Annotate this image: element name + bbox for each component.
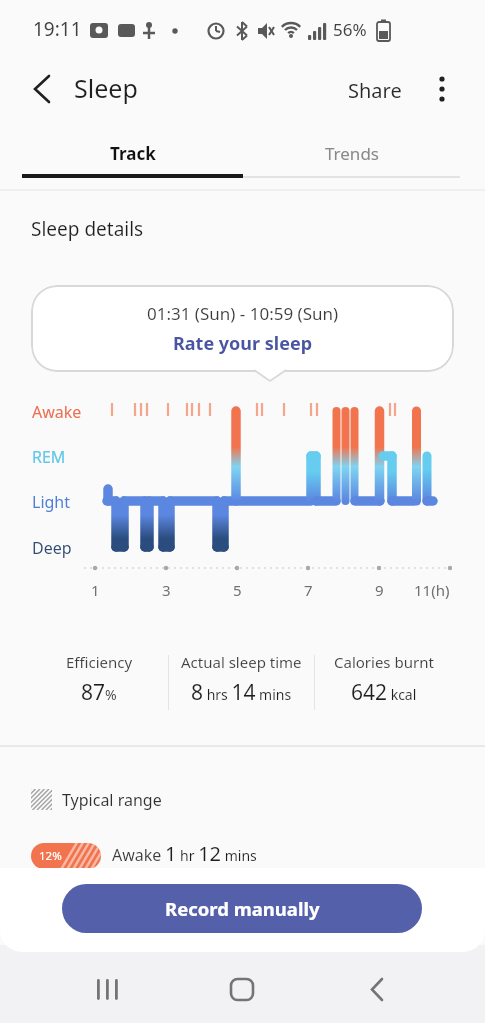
button[interactable]: [424, 68, 460, 110]
staticText: 1 hr 12 mins: [165, 840, 257, 867]
button[interactable]: Trends: [243, 128, 460, 178]
staticText: 19:11: [33, 16, 82, 42]
staticText: 11(h): [414, 580, 450, 600]
staticText: Awake: [32, 401, 82, 423]
staticText: 9: [375, 580, 384, 600]
staticText: 642 kcal: [351, 678, 417, 707]
staticText: Share: [348, 77, 402, 104]
staticText: 8 hrs 14 mins: [191, 678, 292, 707]
staticText: Sleep details: [31, 216, 144, 242]
staticText: Record manually: [165, 896, 320, 921]
staticText: 7: [304, 580, 313, 600]
staticText: 3: [162, 580, 171, 600]
staticText: Deep: [32, 537, 72, 559]
staticText: 12%: [39, 848, 62, 864]
staticText: Trends: [325, 142, 379, 165]
button[interactable]: Track: [22, 128, 243, 178]
staticText: Awake: [112, 844, 162, 866]
staticText: Rate your sleep: [173, 331, 313, 356]
staticText: Typical range: [62, 789, 162, 811]
staticText: 56%: [333, 18, 367, 41]
staticText: 01:31 (Sun) - 10:59 (Sun): [147, 302, 339, 325]
staticText: Calories burnt: [334, 652, 434, 672]
staticText: Efficiency: [66, 652, 133, 672]
staticText: 1: [91, 580, 100, 600]
staticText: Actual sleep time: [181, 652, 302, 672]
button[interactable]: Record manually: [62, 884, 422, 933]
staticText: Sleep: [74, 71, 138, 105]
button[interactable]: [18, 68, 62, 110]
button[interactable]: Share: [330, 70, 420, 110]
staticText: REM: [32, 446, 66, 468]
staticText: 5: [233, 580, 242, 600]
button[interactable]: 01:31 (Sun) - 10:59 (Sun): [31, 285, 454, 372]
button[interactable]: [332, 952, 424, 1023]
button[interactable]: [60, 952, 152, 1023]
staticText: Light: [32, 491, 71, 513]
staticText: 87%: [81, 678, 117, 707]
staticText: Track: [110, 142, 156, 165]
button[interactable]: [196, 952, 288, 1023]
